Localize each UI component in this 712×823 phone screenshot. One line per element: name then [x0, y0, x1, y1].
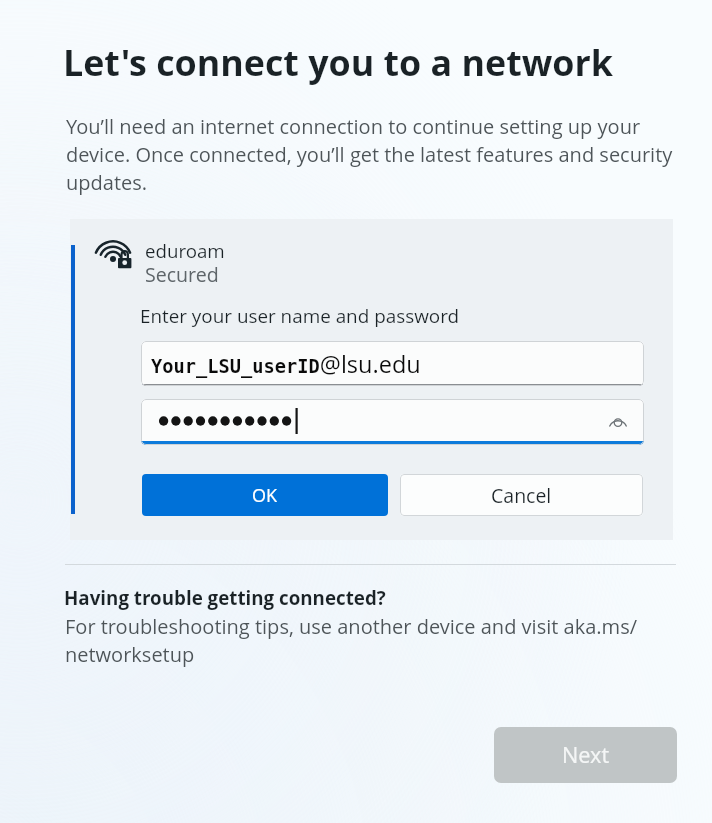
staticText: OK	[252, 483, 278, 508]
staticText: Cancel	[491, 482, 552, 509]
staticText: Your_LSU_userID@lsu.edu	[151, 349, 421, 379]
staticText: Secured	[145, 262, 219, 288]
button[interactable]: Next	[494, 727, 677, 783]
button[interactable]: Your_LSU_userID@lsu.edu	[141, 341, 644, 386]
staticText: eduroam	[145, 238, 225, 264]
staticText: Next	[562, 740, 610, 770]
button[interactable]: OK	[142, 474, 388, 516]
staticText: Having trouble getting connected?	[64, 586, 386, 610]
staticText: Let's connect you to a network	[63, 37, 613, 87]
staticText: For troubleshooting tips, use another de…	[65, 612, 665, 668]
button[interactable]: Show password	[141, 399, 644, 445]
button[interactable]: Cancel	[400, 474, 643, 516]
button[interactable]: Show password	[605, 409, 631, 435]
staticText: Enter your user name and password	[140, 304, 460, 328]
staticText: You’ll need an internet connection to co…	[66, 112, 688, 196]
